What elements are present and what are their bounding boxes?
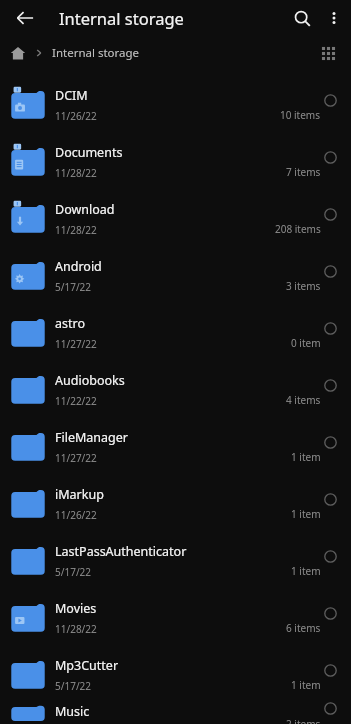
button[interactable]: Download: [0, 190, 351, 247]
staticText: 5/17/22: [55, 565, 92, 579]
button[interactable]: Select Music: [317, 698, 343, 719]
staticText: 7 items: [286, 165, 321, 179]
staticText: 11/28/22: [55, 622, 97, 636]
staticText: Download: [55, 201, 115, 218]
staticText: Audiobooks: [55, 372, 125, 389]
button[interactable]: Select Audiobooks: [317, 372, 343, 398]
staticText: 3 items: [286, 279, 321, 293]
staticText: 5/17/22: [55, 280, 92, 294]
staticText: 11/28/22: [55, 166, 97, 180]
staticText: FileManager: [55, 429, 128, 446]
button[interactable]: Movies: [0, 589, 351, 646]
button[interactable]: DCIM: [0, 76, 351, 133]
staticText: 11/28/22: [55, 223, 97, 237]
staticText: 208 items: [275, 222, 321, 236]
button[interactable]: Documents: [0, 133, 351, 190]
button[interactable]: Back: [8, 1, 42, 35]
button[interactable]: Select iMarkup: [317, 486, 343, 512]
button[interactable]: Select Download: [317, 201, 343, 227]
staticText: 5/17/22: [55, 679, 92, 693]
staticText: 11/27/22: [55, 337, 97, 351]
button[interactable]: More options: [317, 1, 351, 35]
button[interactable]: Select Movies: [317, 600, 343, 626]
button[interactable]: astro: [0, 304, 351, 361]
staticText: Mp3Cutter: [55, 657, 119, 674]
button[interactable]: Music: [0, 703, 351, 724]
staticText: 6 items: [286, 621, 321, 635]
button[interactable]: Mp3Cutter: [0, 646, 351, 703]
button[interactable]: Select DCIM: [317, 87, 343, 113]
staticText: 1 item: [291, 450, 321, 464]
button[interactable]: Select Documents: [317, 144, 343, 170]
button[interactable]: Select Android: [317, 258, 343, 284]
staticText: LastPassAuthenticator: [55, 543, 187, 560]
button[interactable]: Select FileManager: [317, 429, 343, 455]
staticText: 4 items: [286, 393, 321, 407]
staticText: 11/26/22: [55, 508, 97, 522]
staticText: 1 item: [291, 507, 321, 521]
staticText: 10 items: [280, 108, 321, 122]
staticText: DCIM: [55, 87, 88, 104]
staticText: 11/22/22: [55, 394, 97, 408]
button[interactable]: Search: [285, 1, 319, 35]
button[interactable]: FileManager: [0, 418, 351, 475]
button[interactable]: Audiobooks: [0, 361, 351, 418]
button[interactable]: Android: [0, 247, 351, 304]
staticText: 11/27/22: [55, 451, 97, 465]
staticText: 0 item: [291, 336, 321, 350]
staticText: Documents: [55, 144, 123, 161]
staticText: 1 item: [291, 564, 321, 578]
staticText: Movies: [55, 600, 97, 617]
button[interactable]: Internal storage: [10, 45, 140, 61]
staticText: iMarkup: [55, 486, 104, 503]
staticText: Music: [55, 703, 90, 720]
button[interactable]: iMarkup: [0, 475, 351, 532]
staticText: Internal storage: [59, 7, 184, 29]
staticText: Internal storage: [52, 45, 140, 61]
button[interactable]: Select LastPassAuthenticator: [317, 543, 343, 569]
staticText: astro: [55, 315, 85, 332]
staticText: Android: [55, 258, 102, 275]
staticText: 1 item: [291, 678, 321, 692]
button[interactable]: Select astro: [317, 315, 343, 341]
button[interactable]: LastPassAuthenticator: [0, 532, 351, 589]
staticText: 11/26/22: [55, 109, 97, 123]
staticText: 2 items: [286, 717, 321, 724]
button[interactable]: Grid view: [313, 38, 343, 68]
button[interactable]: Select Mp3Cutter: [317, 657, 343, 683]
